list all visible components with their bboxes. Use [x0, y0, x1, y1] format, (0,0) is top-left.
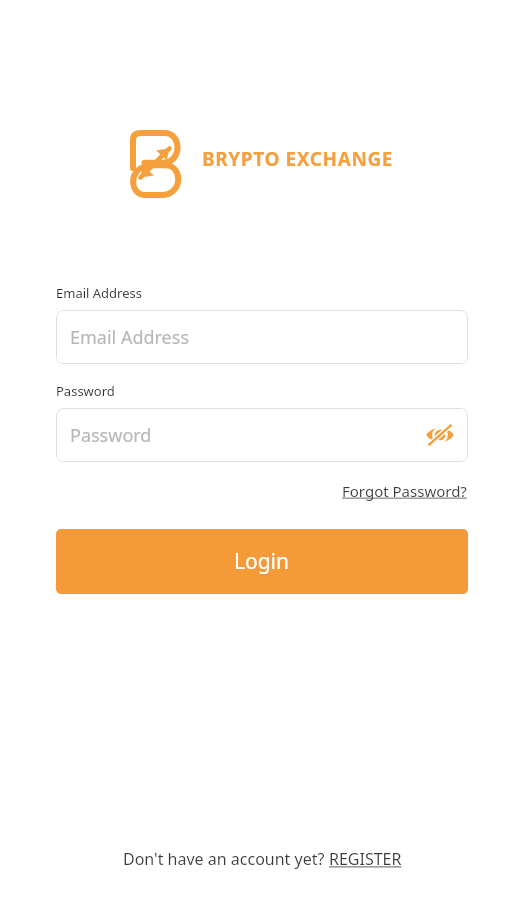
staticText: Email Address	[70, 325, 190, 350]
staticText: BRYPTO EXCHANGE	[202, 146, 394, 172]
button[interactable]: Forgot Password?	[341, 479, 468, 503]
button[interactable]: Login	[56, 529, 468, 594]
staticText: REGISTER	[329, 848, 402, 870]
staticText: Don't have an account yet?	[123, 848, 329, 870]
button[interactable]: Show password	[422, 417, 458, 453]
button[interactable]: REGISTER	[329, 848, 402, 870]
button[interactable]: Email Address	[56, 310, 468, 364]
staticText: Forgot Password?	[342, 481, 467, 501]
button[interactable]: Password	[56, 408, 468, 462]
staticText: Login	[234, 547, 290, 576]
staticText: Email Address	[56, 284, 142, 302]
staticText: Password	[70, 423, 152, 448]
staticText: Password	[56, 382, 115, 400]
